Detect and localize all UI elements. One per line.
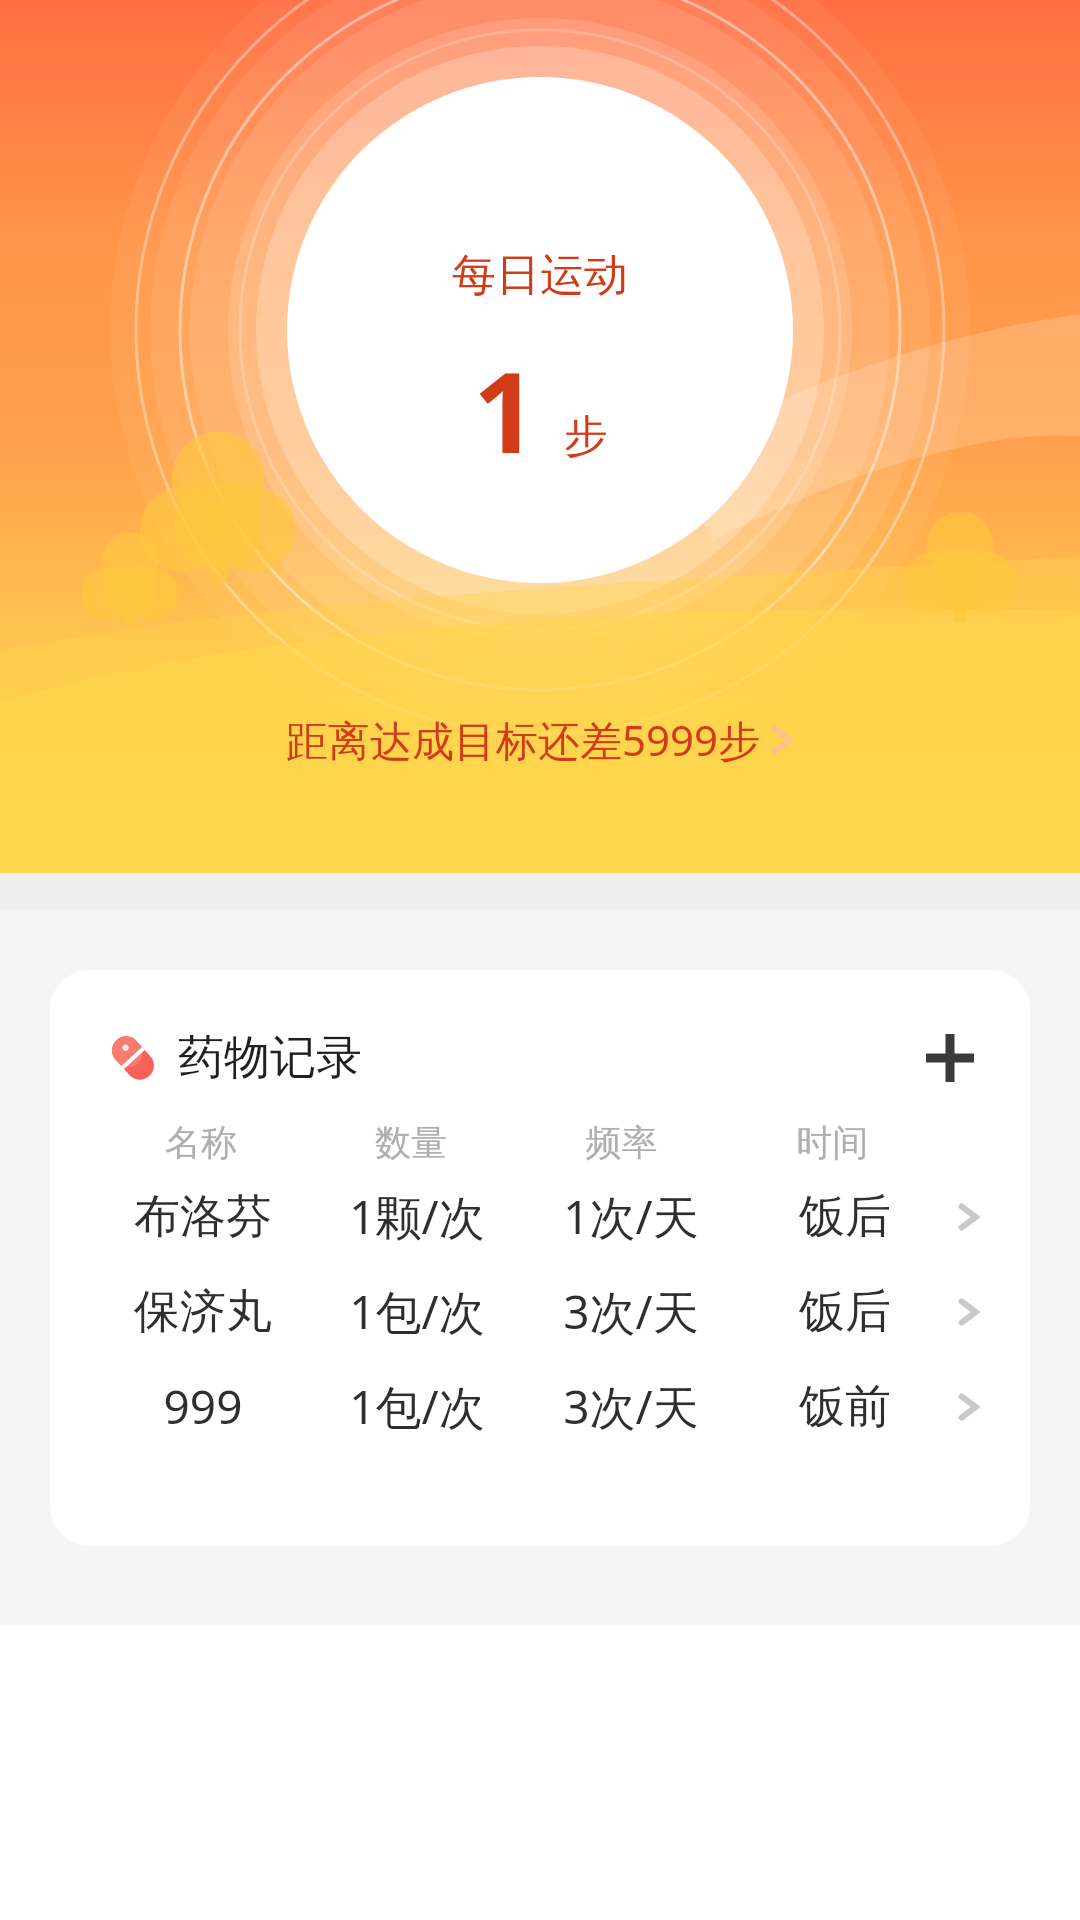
staticText: 布洛芬 bbox=[96, 1188, 310, 1246]
staticText: 饭后 bbox=[738, 1283, 952, 1341]
staticText: 1包/次 bbox=[310, 1375, 524, 1438]
button[interactable]: 添加药物 bbox=[914, 1022, 986, 1094]
button[interactable]: 布洛芬 bbox=[50, 1169, 1030, 1264]
staticText: 保济丸 bbox=[96, 1283, 310, 1341]
staticText: 3次/天 bbox=[524, 1280, 738, 1343]
staticText: 1颗/次 bbox=[310, 1185, 524, 1248]
staticText: 999 bbox=[96, 1375, 310, 1438]
staticText: 3次/天 bbox=[524, 1375, 738, 1438]
staticText: 药物记录 bbox=[178, 1029, 362, 1087]
button[interactable]: 保济丸 bbox=[50, 1264, 1030, 1359]
staticText: 名称 bbox=[96, 1120, 306, 1165]
staticText: 饭前 bbox=[738, 1378, 952, 1436]
staticText: 1次/天 bbox=[524, 1185, 738, 1248]
staticText: 1 bbox=[473, 333, 538, 486]
staticText: 每日运动 bbox=[452, 248, 628, 303]
staticText: 步 bbox=[564, 409, 608, 464]
staticText: 时间 bbox=[727, 1120, 938, 1165]
button[interactable]: 药物记录 bbox=[50, 970, 1030, 1120]
staticText: 饭后 bbox=[738, 1188, 952, 1246]
staticText: 数量 bbox=[306, 1120, 516, 1165]
button[interactable]: 距离达成目标还差5999步 bbox=[276, 705, 805, 774]
button[interactable]: 999 bbox=[50, 1359, 1030, 1454]
staticText: 频率 bbox=[516, 1120, 727, 1165]
staticText: 距离达成目标还差5999步 bbox=[286, 711, 761, 768]
staticText: 1包/次 bbox=[310, 1280, 524, 1343]
